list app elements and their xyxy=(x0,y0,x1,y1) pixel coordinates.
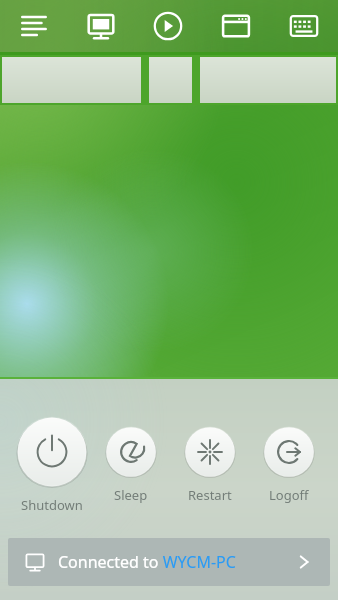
staticText: Shutdown xyxy=(21,496,83,514)
button[interactable]: Shutdown xyxy=(16,416,88,488)
button[interactable]: Media xyxy=(134,0,202,52)
button[interactable]: Windows xyxy=(202,0,270,52)
button[interactable]: Restart xyxy=(184,426,236,478)
button[interactable]: Menu xyxy=(0,0,67,52)
staticText: Connected to WYCM-PC xyxy=(58,551,236,573)
button[interactable]: Connected to WYCM-PC xyxy=(8,538,330,586)
button[interactable]: Panel one xyxy=(2,57,141,103)
button[interactable]: Panel two xyxy=(149,57,192,103)
button[interactable]: Desktop xyxy=(67,0,134,52)
button[interactable]: Keyboard xyxy=(270,0,338,52)
staticText: Logoff xyxy=(269,486,309,504)
staticText: Restart xyxy=(188,486,232,504)
button[interactable]: Sleep xyxy=(105,426,157,478)
button[interactable]: Panel three xyxy=(200,57,336,103)
staticText: Sleep xyxy=(114,486,148,504)
button[interactable]: Logoff xyxy=(263,426,315,478)
